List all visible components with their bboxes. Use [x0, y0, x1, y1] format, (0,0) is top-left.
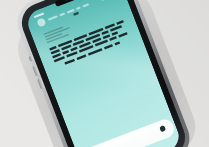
button[interactable]: Chat conversation on phone [0, 0, 209, 147]
